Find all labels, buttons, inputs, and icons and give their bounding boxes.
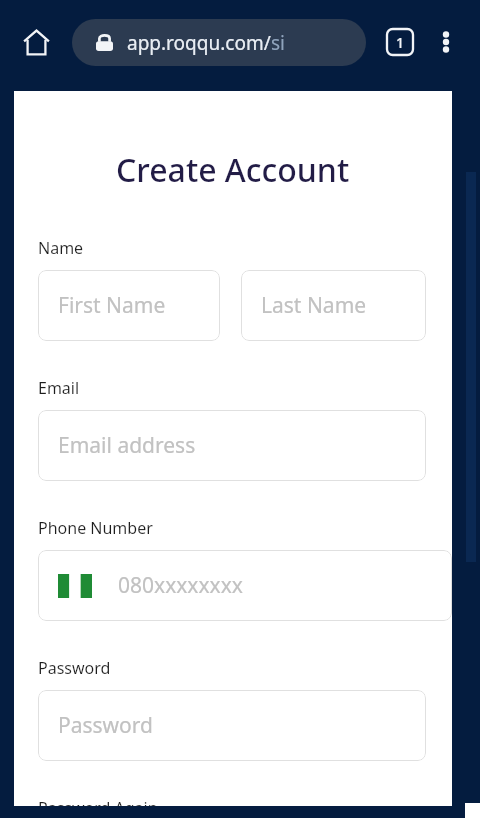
button[interactable]: Last Name xyxy=(241,270,426,341)
staticText: 080xxxxxxxx xyxy=(118,571,243,600)
staticText: Name xyxy=(38,237,84,259)
button[interactable]: More options xyxy=(426,22,466,62)
staticText: Email xyxy=(38,377,80,399)
button[interactable]: Home xyxy=(14,20,58,64)
button[interactable]: Password xyxy=(38,690,426,761)
staticText: 1 xyxy=(396,33,405,52)
staticText: si xyxy=(271,30,286,56)
button[interactable]: 080xxxxxxxx xyxy=(38,550,452,621)
staticText: Create Account xyxy=(116,148,350,192)
staticText: First Name xyxy=(58,291,166,320)
staticText: Password xyxy=(38,657,111,679)
staticText: Last Name xyxy=(261,291,367,320)
button[interactable]: Tabs xyxy=(378,20,422,64)
staticText: Password xyxy=(58,711,153,740)
staticText: Phone Number xyxy=(38,517,153,539)
button[interactable]: Email address xyxy=(38,410,426,481)
staticText: app.roqqu.com/ xyxy=(127,30,271,56)
staticText: Password Again xyxy=(38,797,158,806)
staticText: Email address xyxy=(58,431,196,460)
button[interactable]: First Name xyxy=(38,270,220,341)
button[interactable]: app.roqqu.com/ xyxy=(72,19,366,66)
